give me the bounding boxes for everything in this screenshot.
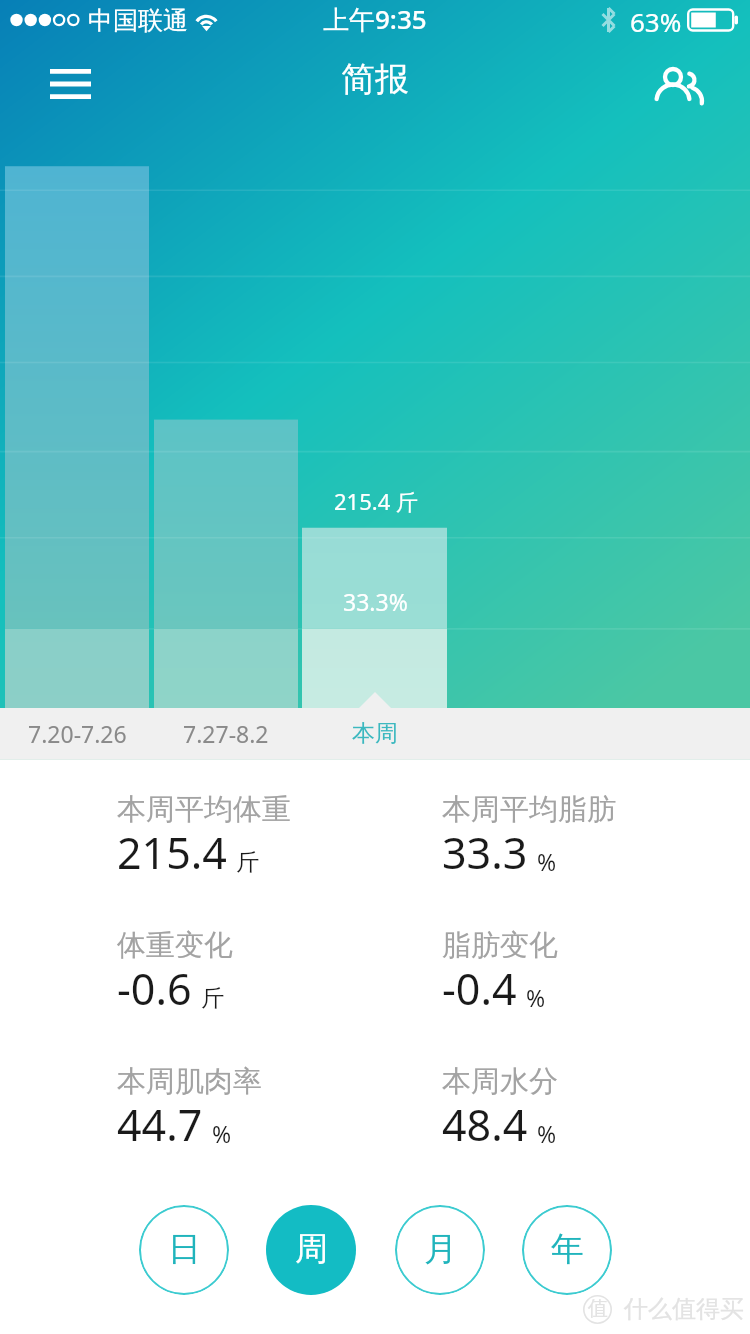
button[interactable]: 7.20-7.26 (3, 708, 151, 759)
staticText: 周 (295, 1228, 328, 1270)
staticText: % (212, 1118, 232, 1149)
staticText: 年 (551, 1228, 584, 1270)
button[interactable]: 脂肪变化 (442, 924, 558, 1020)
staticText: 44.7 (117, 1095, 203, 1154)
staticText: 脂肪变化 (442, 927, 558, 964)
staticText: % (537, 1118, 557, 1149)
button[interactable]: 年 (522, 1205, 612, 1295)
staticText: 上午9:35 (323, 1, 427, 37)
staticText: 7.20-7.26 (28, 718, 127, 749)
staticText: 值 (588, 1296, 608, 1321)
button[interactable]: 7.27-8.2 (152, 708, 300, 759)
button[interactable]: 周 (266, 1205, 356, 1295)
staticText: 本周肌肉率 (117, 1063, 262, 1100)
staticText: 本周水分 (442, 1063, 558, 1100)
staticText: 简报 (341, 58, 409, 101)
staticText: 本周平均体重 (117, 791, 291, 828)
staticText: -0.4 (442, 959, 517, 1018)
staticText: 本周 (352, 719, 398, 748)
staticText: 月 (424, 1228, 457, 1270)
button[interactable]: 本周平均体重 (117, 788, 291, 884)
staticText: 斤 (236, 848, 259, 877)
button[interactable]: 日 (139, 1205, 229, 1295)
staticText: % (537, 846, 557, 877)
staticText: 48.4 (442, 1095, 528, 1154)
button[interactable]: 本周 (301, 708, 449, 759)
button[interactable]: 本周平均脂肪 (442, 788, 616, 884)
staticText: 日 (168, 1228, 201, 1270)
button[interactable]: Menu (26, 40, 114, 128)
staticText: 33.3% (343, 586, 408, 617)
button[interactable]: Friends (633, 40, 721, 128)
staticText: 63% (630, 4, 682, 39)
staticText: 33.3 (442, 823, 528, 882)
staticText: -0.6 (117, 959, 192, 1018)
staticText: 215.4 (117, 823, 227, 882)
button[interactable]: 月 (395, 1205, 485, 1295)
button[interactable]: 本周肌肉率 (117, 1060, 262, 1156)
staticText: 斤 (201, 984, 224, 1013)
button[interactable]: 体重变化 (117, 924, 233, 1020)
staticText: 本周平均脂肪 (442, 791, 616, 828)
staticText: 215.4 斤 (334, 486, 418, 516)
staticText: 中国联通 (88, 5, 188, 36)
staticText: % (526, 982, 546, 1013)
staticText: 什么值得买 (624, 1294, 744, 1324)
staticText: 体重变化 (117, 927, 233, 964)
button[interactable]: 本周水分 (442, 1060, 558, 1156)
staticText: 7.27-8.2 (183, 718, 269, 749)
